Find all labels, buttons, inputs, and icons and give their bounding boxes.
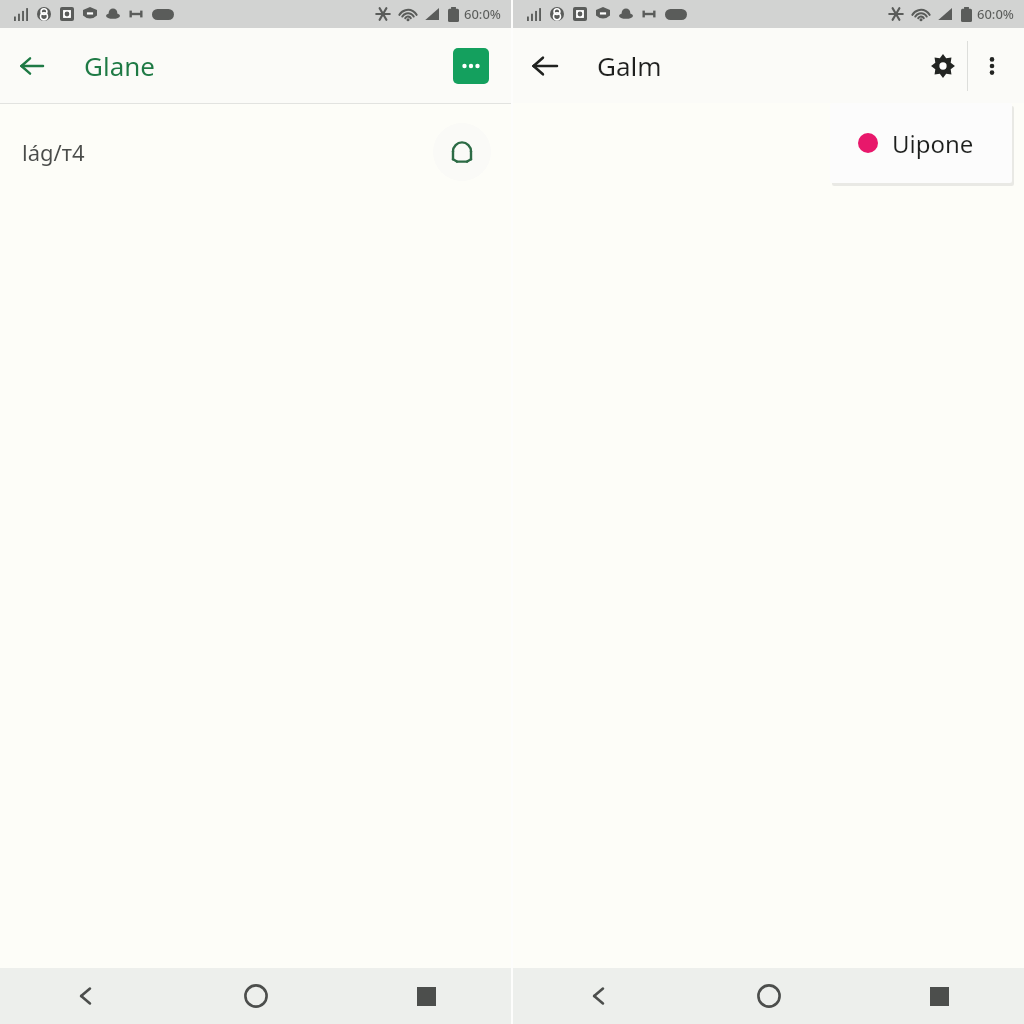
staticText: 60:0% [464,5,501,23]
button[interactable]: Back [521,42,569,90]
button[interactable]: Settings [919,42,967,90]
button[interactable]: More options [968,42,1016,90]
staticText: Galm [597,48,662,83]
staticText: Glane [84,48,155,83]
button[interactable]: Back [513,968,684,1024]
staticText: lág/т4 [22,137,85,167]
button[interactable]: Home [684,968,854,1024]
button[interactable]: Recents [854,968,1024,1024]
button[interactable]: Back [8,42,56,90]
button[interactable]: Recents [341,968,511,1024]
button[interactable]: Uipone [830,103,1012,183]
staticText: Uipone [892,127,974,160]
button[interactable]: More options [453,48,489,84]
staticText: 60:0% [977,5,1014,23]
button[interactable]: Home [171,968,341,1024]
button[interactable]: Headset [433,123,491,181]
button[interactable]: Back [0,968,171,1024]
